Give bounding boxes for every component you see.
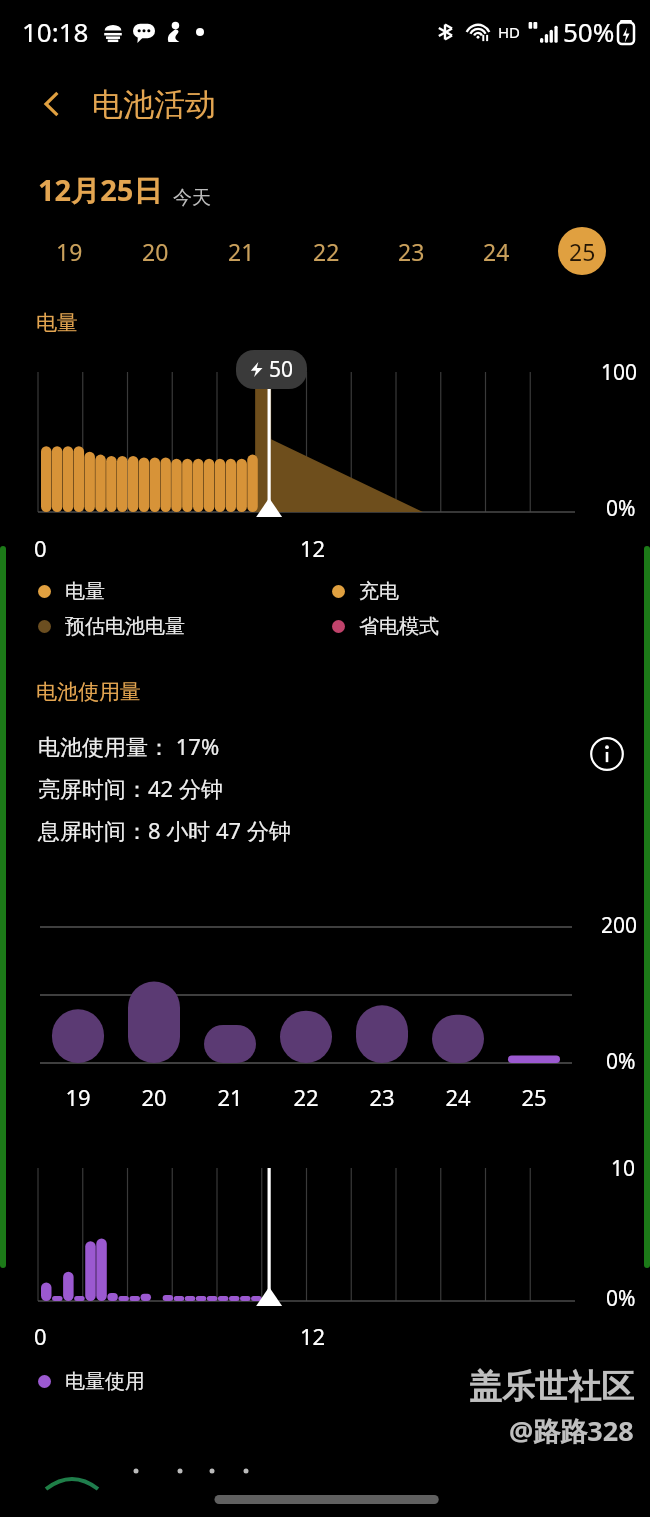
button[interactable]: 22 <box>284 210 369 292</box>
staticText: 20 <box>142 236 169 267</box>
staticText: 24 <box>483 236 510 267</box>
staticText: 12 <box>300 533 326 563</box>
staticText: 12月25日 <box>38 170 163 210</box>
staticText: 22 <box>313 236 340 267</box>
staticText: 盖乐世社区 <box>469 1366 634 1408</box>
staticText: 50 <box>269 355 294 384</box>
staticText: 23 <box>369 1082 395 1112</box>
button[interactable]: 24 <box>454 210 539 292</box>
staticText: 电量 <box>36 310 78 336</box>
button[interactable]: 20 <box>112 210 198 292</box>
staticText: 0% <box>606 1284 636 1313</box>
staticText: 预估电池电量 <box>65 614 185 639</box>
staticText: 20 <box>141 1082 167 1112</box>
button[interactable]: 25 <box>539 210 624 292</box>
staticText: 100 <box>601 358 638 387</box>
staticText: 10:18 <box>22 14 89 49</box>
button[interactable]: 21 <box>198 210 284 292</box>
staticText: 10 <box>611 1154 636 1183</box>
staticText: 22 <box>293 1082 319 1112</box>
staticText: 电量使用 <box>65 1369 145 1394</box>
staticText: 21 <box>217 1082 243 1112</box>
staticText: HD <box>498 22 521 42</box>
staticText: 省电模式 <box>359 614 439 639</box>
staticText: 25 <box>521 1082 547 1112</box>
staticText: 电池使用量： 17% <box>38 731 220 761</box>
staticText: 23 <box>398 236 425 267</box>
staticText: 充电 <box>359 579 399 604</box>
staticText: 50% <box>563 14 615 49</box>
staticText: 19 <box>56 236 83 267</box>
staticText: 电池活动 <box>92 85 216 124</box>
staticText: 21 <box>228 236 255 267</box>
staticText: 12 <box>300 1321 326 1351</box>
button[interactable]: 19 <box>26 210 112 292</box>
staticText: 19 <box>65 1082 91 1112</box>
staticText: 息屏时间：8 小时 47 分钟 <box>38 815 291 845</box>
staticText: 0% <box>606 1047 636 1076</box>
staticText: 电池使用量 <box>36 679 141 705</box>
staticText: 0 <box>34 533 47 563</box>
button[interactable]: Information <box>584 731 630 777</box>
staticText: 0 <box>34 1321 47 1351</box>
staticText: 200 <box>601 911 638 940</box>
staticText: 25 <box>569 236 596 267</box>
staticText: 今天 <box>173 186 211 210</box>
button[interactable]: 23 <box>369 210 454 292</box>
staticText: 电量 <box>65 579 105 604</box>
staticText: 亮屏时间：42 分钟 <box>38 773 223 803</box>
staticText: @路路328 <box>509 1412 634 1449</box>
staticText: 24 <box>445 1082 471 1112</box>
button[interactable]: Back <box>26 78 78 130</box>
staticText: 0% <box>606 494 636 523</box>
